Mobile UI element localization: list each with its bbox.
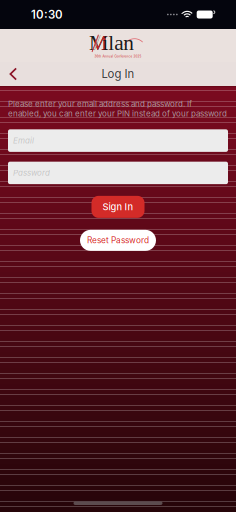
staticText: Log In bbox=[101, 67, 134, 81]
button[interactable]: Back bbox=[0, 62, 27, 86]
staticText: Reset Password bbox=[87, 235, 149, 245]
staticText: 36th Annual Conference 2025 bbox=[94, 55, 141, 58]
staticText: M bbox=[89, 31, 108, 54]
staticText: M bbox=[89, 31, 108, 54]
button[interactable]: Reset Password bbox=[80, 230, 156, 251]
staticText: ilan bbox=[102, 31, 134, 54]
staticText: Sign In bbox=[102, 201, 133, 212]
staticText: enabled, you can enter your PIN instead … bbox=[8, 109, 227, 118]
staticText: Please enter your email address and pass… bbox=[8, 99, 192, 109]
staticText: 10:30 bbox=[31, 8, 63, 21]
staticText: Email bbox=[13, 136, 34, 145]
staticText: Password bbox=[13, 168, 50, 178]
button[interactable]: Sign In bbox=[91, 196, 144, 218]
